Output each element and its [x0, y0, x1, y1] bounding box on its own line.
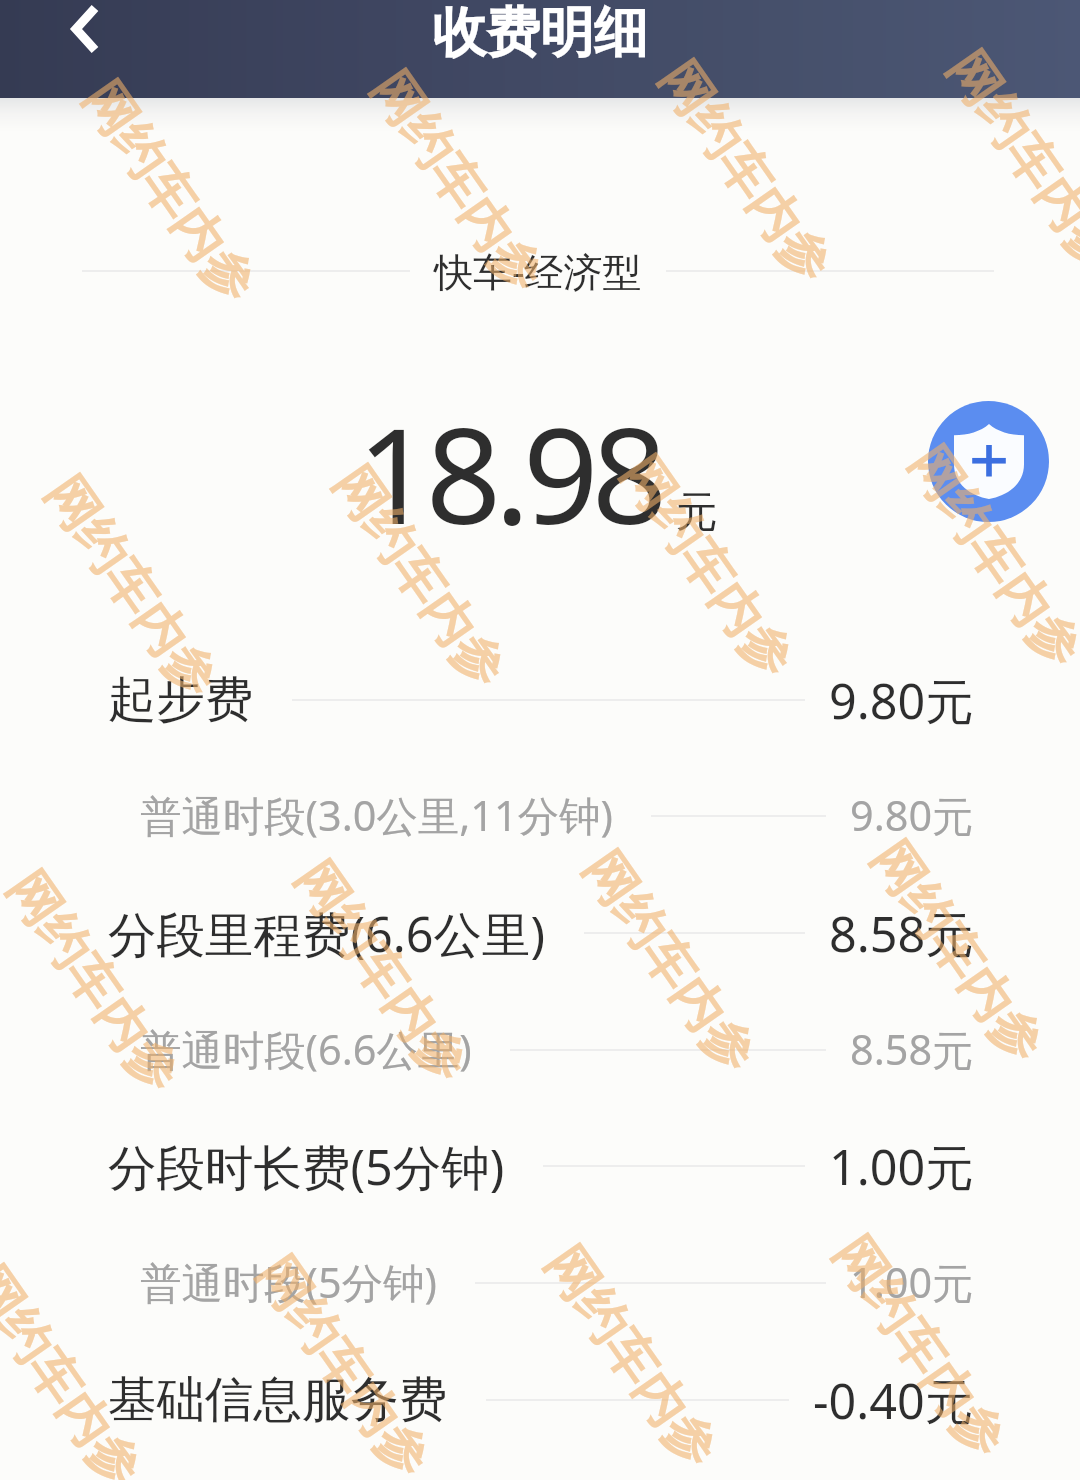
staticText: 9.80元 — [850, 787, 974, 844]
staticText: 分段里程费(6.6公里) — [108, 900, 546, 966]
staticText: 8.58元 — [829, 900, 974, 966]
staticText: 基础信息服务费 — [108, 1369, 448, 1430]
staticText: 普通时段(6.6公里) — [140, 1021, 472, 1078]
staticText: 8.58元 — [850, 1021, 974, 1078]
button[interactable]: 分段里程费(6.6公里) — [0, 874, 1080, 991]
staticText: 1.00元 — [829, 1133, 974, 1199]
staticText: 9.80元 — [829, 667, 974, 733]
staticText: 1.00元 — [850, 1254, 974, 1311]
staticText: 收费明细 — [432, 0, 648, 67]
button[interactable]: 起步费 — [0, 641, 1080, 758]
button[interactable]: 基础信息服务费 — [0, 1341, 1080, 1458]
button[interactable]: 普通时段(5分钟) — [0, 1224, 1080, 1341]
button[interactable]: 分段时长费(5分钟) — [0, 1107, 1080, 1224]
staticText: 元 — [676, 486, 718, 539]
staticText: 快车-经济型 — [434, 244, 642, 297]
staticText: 普通时段(5分钟) — [140, 1254, 437, 1311]
staticText: 起步费 — [108, 669, 254, 730]
button[interactable]: Back — [54, 0, 116, 60]
staticText: 普通时段(3.0公里,11分钟) — [140, 787, 613, 844]
staticText: -0.40元 — [813, 1367, 974, 1433]
staticText: 分段时长费(5分钟) — [108, 1133, 505, 1199]
button[interactable]: 普通时段(6.6公里) — [0, 991, 1080, 1108]
staticText: 18.98 — [357, 383, 661, 563]
button[interactable]: Add insurance — [928, 401, 1049, 522]
button[interactable]: 普通时段(3.0公里,11分钟) — [0, 757, 1080, 874]
